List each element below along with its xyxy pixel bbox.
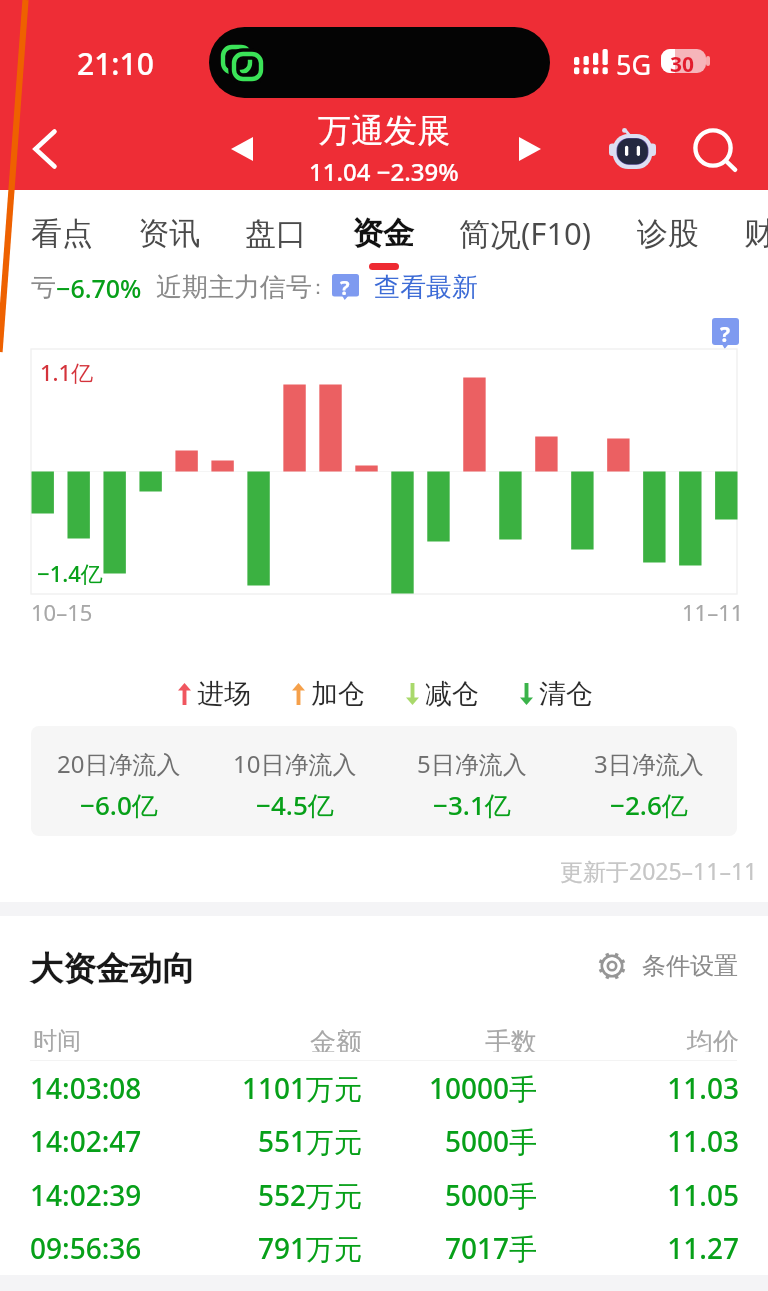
staticText: 11.03 [611,1069,739,1107]
staticText: 进场 [197,677,251,711]
staticText: 5G [616,46,652,83]
staticText: 近期主力信号 [156,271,312,303]
staticText: 均价 [611,1026,739,1052]
staticText: 加仓 [311,677,365,711]
button[interactable]: Chart help [712,318,739,349]
staticText: 09:56:36 [30,1229,142,1267]
staticText: 14:02:47 [30,1122,142,1160]
staticText: 7017手 [409,1229,537,1267]
staticText: 条件设置 [642,951,738,981]
button[interactable]: 简况(F10) [459,207,592,259]
staticText: 11.03 [611,1122,739,1160]
staticText: 金额 [234,1026,362,1052]
staticText: 551万元 [234,1122,362,1160]
staticText: 20日净流入 [57,747,181,780]
staticText: 3日净流入 [594,747,704,780]
staticText: 10日净流入 [233,747,357,780]
button[interactable]: 查看最新 [374,271,478,303]
button[interactable]: 清仓 [520,677,593,711]
staticText: ? [340,274,350,300]
staticText: 万通发展 [318,110,450,152]
staticText: 11.05 [611,1176,739,1214]
staticText: 资讯 [138,214,200,253]
staticText: 简况(F10) [459,212,592,254]
staticText: −6.0亿 [80,787,158,823]
button[interactable]: 加仓 [292,677,365,711]
staticText: −6.70% [56,271,142,303]
staticText: 30 [670,50,695,73]
button[interactable]: 减仓 [406,677,479,711]
staticText: ： [308,275,328,300]
staticText: 5000手 [409,1122,537,1160]
button[interactable]: 资讯 [138,207,200,259]
staticText: −2.6亿 [610,787,688,823]
staticText: 791万元 [234,1229,362,1267]
staticText: 11–11 [682,597,744,627]
button[interactable]: 5日净流入 [383,726,560,836]
staticText: 清仓 [539,677,593,711]
button[interactable]: 3日净流入 [560,726,737,836]
button[interactable]: 14:02:47 [0,1121,768,1161]
staticText: 亏 [31,272,56,303]
staticText: −4.5亿 [256,787,334,823]
staticText: 10–15 [31,597,93,627]
staticText: 10000手 [409,1069,537,1107]
button[interactable]: 10日净流入 [207,726,383,836]
button[interactable]: Help [332,274,359,300]
staticText: ? [720,320,731,349]
button[interactable]: AI assistant [604,120,660,176]
button[interactable]: 诊股 [637,207,699,259]
button[interactable]: 资金 [352,207,414,259]
staticText: −1.4亿 [37,558,103,588]
button[interactable]: Previous stock [214,121,269,176]
staticText: 14:03:08 [30,1069,142,1107]
staticText: 大资金动向 [30,948,195,990]
staticText: 5日净流入 [417,747,527,780]
staticText: 看点 [31,214,93,253]
staticText: 21:10 [77,43,154,84]
button[interactable]: Back [10,114,80,184]
staticText: 资金 [352,214,414,253]
button[interactable]: 财 [744,207,768,259]
button[interactable]: Search [685,120,741,176]
button[interactable]: Next stock [502,121,557,176]
staticText: 552万元 [234,1176,362,1214]
staticText: 盘口 [245,214,307,253]
staticText: 1.1亿 [40,357,94,387]
staticText: 11.04 −2.39% [309,155,459,188]
button[interactable]: 进场 [178,677,251,711]
button[interactable]: 条件设置 [596,950,738,982]
staticText: −3.1亿 [433,787,511,823]
button[interactable]: 14:03:08 [0,1068,768,1108]
button[interactable]: 看点 [31,207,93,259]
button[interactable]: 20日净流入 [31,726,207,836]
staticText: 时间 [33,1026,81,1052]
staticText: 1101万元 [234,1069,362,1107]
staticText: 财 [744,214,768,253]
button[interactable]: 09:56:36 [0,1228,768,1268]
staticText: 减仓 [425,677,479,711]
staticText: 手数 [409,1026,537,1052]
button[interactable]: 14:02:39 [0,1175,768,1215]
staticText: 诊股 [637,214,699,253]
staticText: 5000手 [409,1176,537,1214]
staticText: 11.27 [611,1229,739,1267]
staticText: 更新于2025–11–11 [560,855,758,886]
button[interactable]: 盘口 [245,207,307,259]
staticText: 14:02:39 [30,1176,142,1214]
